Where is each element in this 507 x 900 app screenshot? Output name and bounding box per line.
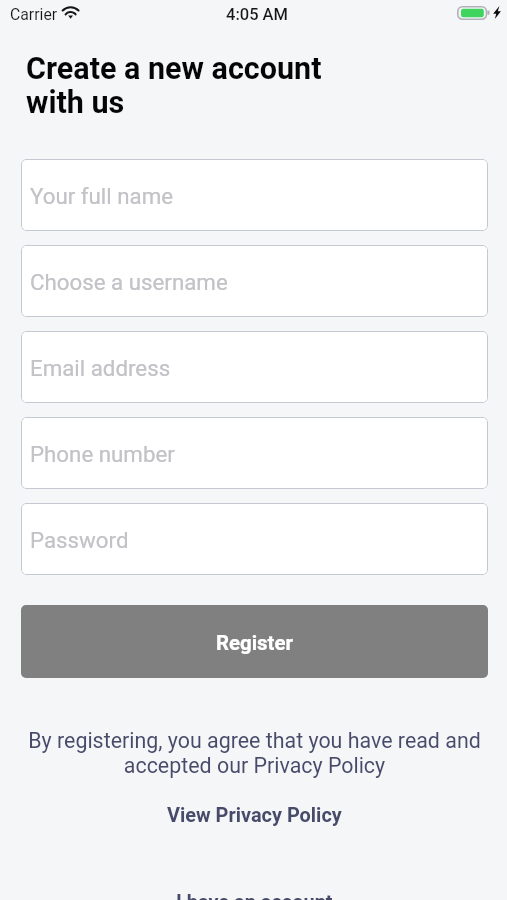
staticText: Register (216, 631, 293, 655)
staticText: Your full name (30, 183, 174, 209)
staticText: 4:05 AM (226, 5, 289, 24)
staticText: I have an account (176, 891, 333, 900)
button[interactable]: I have an account (176, 891, 333, 900)
staticText: Email address (30, 355, 171, 381)
other: Battery full (457, 6, 491, 20)
staticText: Carrier (10, 5, 58, 24)
staticText: Create a new account with us (26, 51, 322, 120)
button[interactable]: Choose a username (21, 245, 488, 317)
staticText: Phone number (30, 441, 175, 467)
other: Wi-Fi signal (61, 4, 81, 20)
other: Charging (493, 6, 501, 19)
staticText: By registering, you agree that you have … (21, 728, 488, 778)
button[interactable]: Email address (21, 331, 488, 403)
button[interactable]: Register (21, 605, 488, 678)
button[interactable]: Password (21, 503, 488, 575)
button[interactable]: View Privacy Policy (167, 804, 342, 827)
staticText: Password (30, 527, 129, 553)
button[interactable]: Your full name (21, 159, 488, 231)
staticText: Choose a username (30, 269, 228, 295)
staticText: View Privacy Policy (167, 804, 342, 827)
button[interactable]: Phone number (21, 417, 488, 489)
